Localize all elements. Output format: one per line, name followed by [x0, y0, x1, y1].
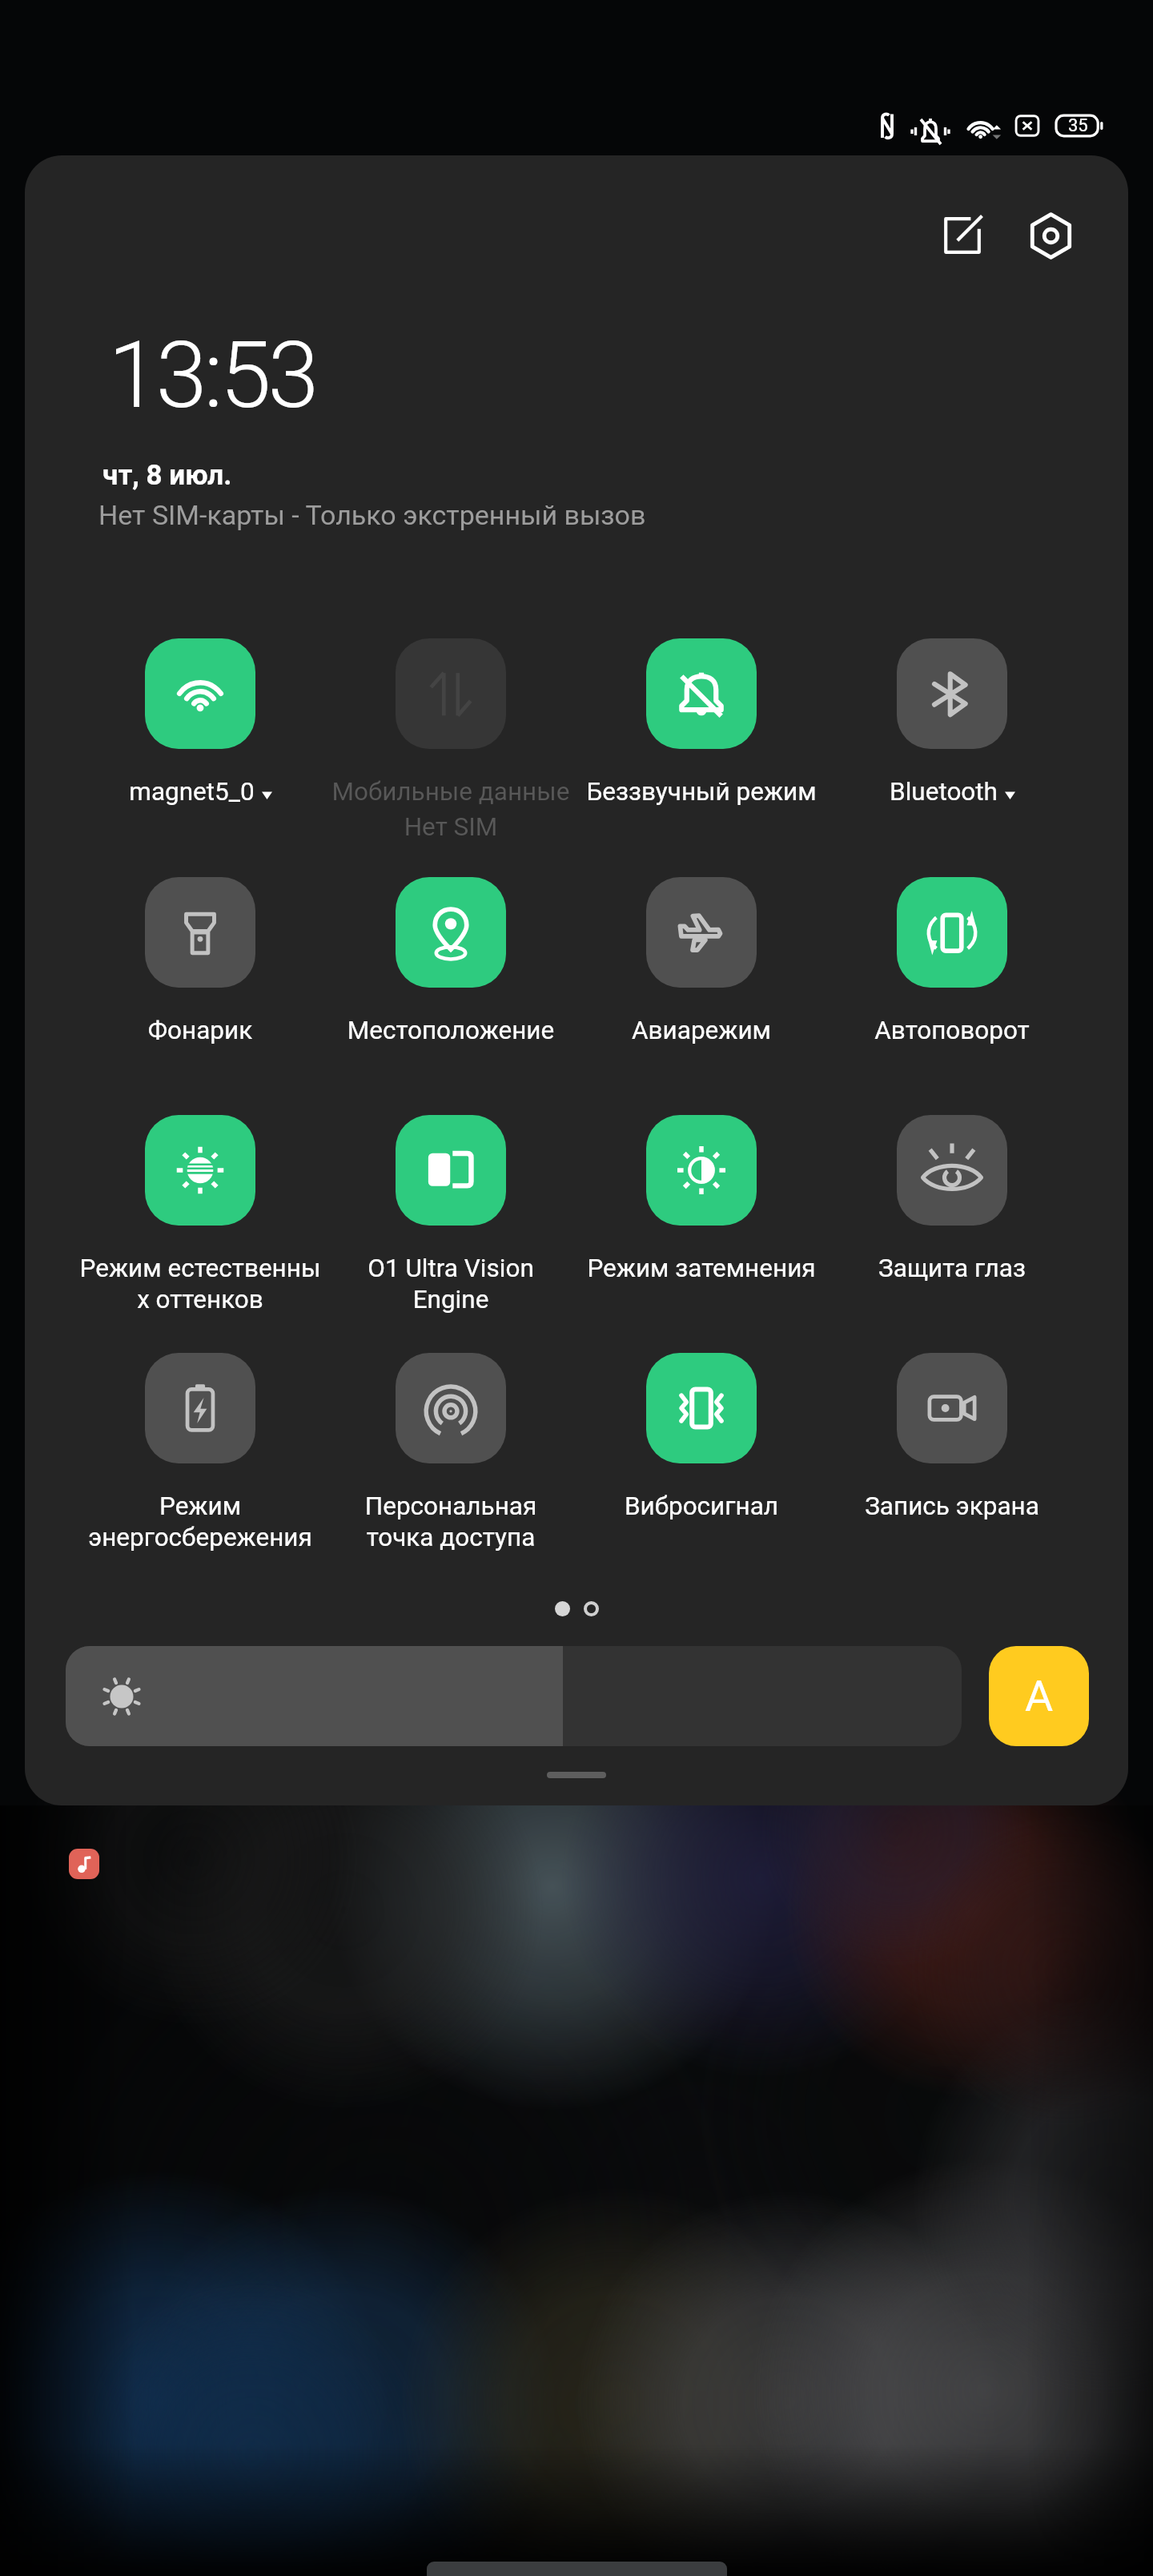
staticText: Персональная точка доступа: [326, 1491, 576, 1552]
staticText: Режим затемнения: [576, 1254, 826, 1283]
button[interactable]: Автоповорот: [827, 877, 1077, 1045]
button[interactable]: Brightness: [66, 1646, 962, 1746]
button[interactable]: Мобильные данные: [326, 638, 576, 842]
staticText: Защита глаз: [827, 1254, 1077, 1283]
button[interactable]: O1 Ultra Vision Engine: [326, 1115, 576, 1314]
button[interactable]: Персональная точка доступа: [326, 1353, 576, 1552]
button[interactable]: Местоположение: [326, 877, 576, 1045]
button[interactable]: Settings: [1017, 202, 1084, 269]
button[interactable]: Защита глаз: [827, 1115, 1077, 1283]
staticText: A: [1025, 1671, 1054, 1721]
staticText: Запись экрана: [827, 1491, 1077, 1521]
staticText: 35: [1068, 115, 1088, 136]
button[interactable]: Авиарежим: [576, 877, 826, 1045]
button[interactable]: Bluetooth: [827, 638, 1077, 807]
button[interactable]: Edit: [929, 202, 996, 269]
staticText: magnet5_0: [129, 777, 255, 807]
staticText: Автоповорот: [827, 1016, 1077, 1045]
button[interactable]: Беззвучный режим: [576, 638, 826, 807]
button[interactable]: Режим энергосбережения: [75, 1353, 325, 1552]
button[interactable]: Фонарик: [75, 877, 325, 1045]
button[interactable]: Music: [69, 1849, 99, 1879]
staticText: Вибросигнал: [576, 1491, 826, 1521]
staticText: O1 Ultra Vision Engine: [326, 1254, 576, 1314]
button[interactable]: A: [989, 1646, 1089, 1746]
staticText: Нет SIM-карты - Только экстренный вызов: [98, 499, 646, 531]
button[interactable]: Режим естественны х оттенков: [75, 1115, 325, 1314]
staticText: Беззвучный режим: [576, 777, 826, 807]
staticText: Режим энергосбережения: [75, 1491, 325, 1552]
staticText: Авиарежим: [576, 1016, 826, 1045]
staticText: Режим естественны х оттенков: [75, 1254, 325, 1314]
button[interactable]: magnet5_0: [75, 638, 325, 807]
staticText: чт, 8 июл.: [102, 459, 232, 492]
staticText: Нет SIM: [326, 812, 576, 842]
button[interactable]: Вибросигнал: [576, 1353, 826, 1521]
staticText: Мобильные данные: [326, 777, 576, 807]
staticText: 13:53: [108, 321, 316, 429]
button[interactable]: Запись экрана: [827, 1353, 1077, 1521]
staticText: Местоположение: [326, 1016, 576, 1045]
staticText: Фонарик: [75, 1016, 325, 1045]
staticText: Bluetooth: [890, 777, 998, 807]
button[interactable]: Режим затемнения: [576, 1115, 826, 1283]
